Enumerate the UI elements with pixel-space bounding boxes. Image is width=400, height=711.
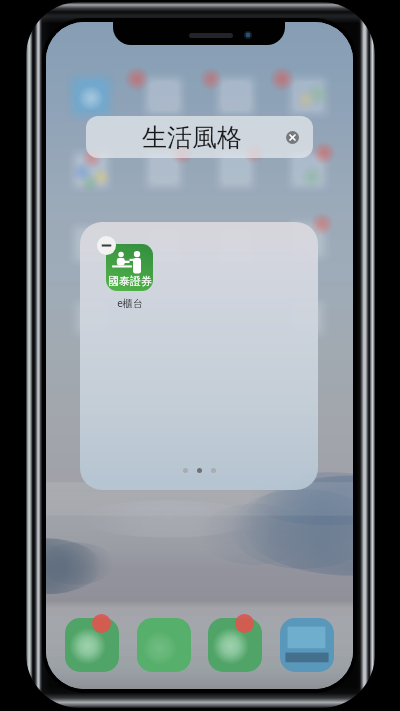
button[interactable]: 國泰證券 (106, 244, 153, 291)
button[interactable] (65, 618, 119, 672)
button[interactable]: Remove app (97, 236, 116, 255)
staticText: 生活風格 (142, 122, 242, 153)
button[interactable] (280, 618, 334, 672)
button[interactable] (137, 618, 191, 672)
button[interactable]: 生活風格 (86, 116, 313, 158)
staticText: e櫃台 (117, 296, 143, 310)
button[interactable]: Clear folder name (286, 131, 299, 144)
staticText: 國泰證券 (108, 274, 152, 288)
button[interactable] (208, 618, 262, 672)
